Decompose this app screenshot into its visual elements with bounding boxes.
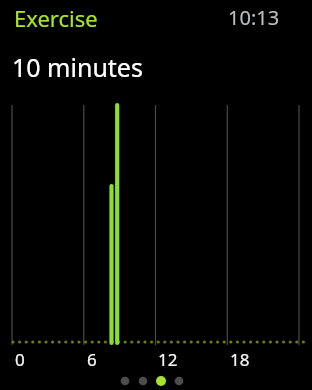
staticText: 12 xyxy=(158,348,178,371)
button[interactable]: Exercise minutes chart xyxy=(0,0,312,390)
staticText: 18 xyxy=(230,348,250,371)
staticText: 6 xyxy=(87,348,97,371)
staticText: 10 minutes xyxy=(12,50,143,84)
staticText: 0 xyxy=(15,348,25,371)
button[interactable]: Exercise xyxy=(14,3,98,33)
staticText: 10:13 xyxy=(228,4,280,31)
